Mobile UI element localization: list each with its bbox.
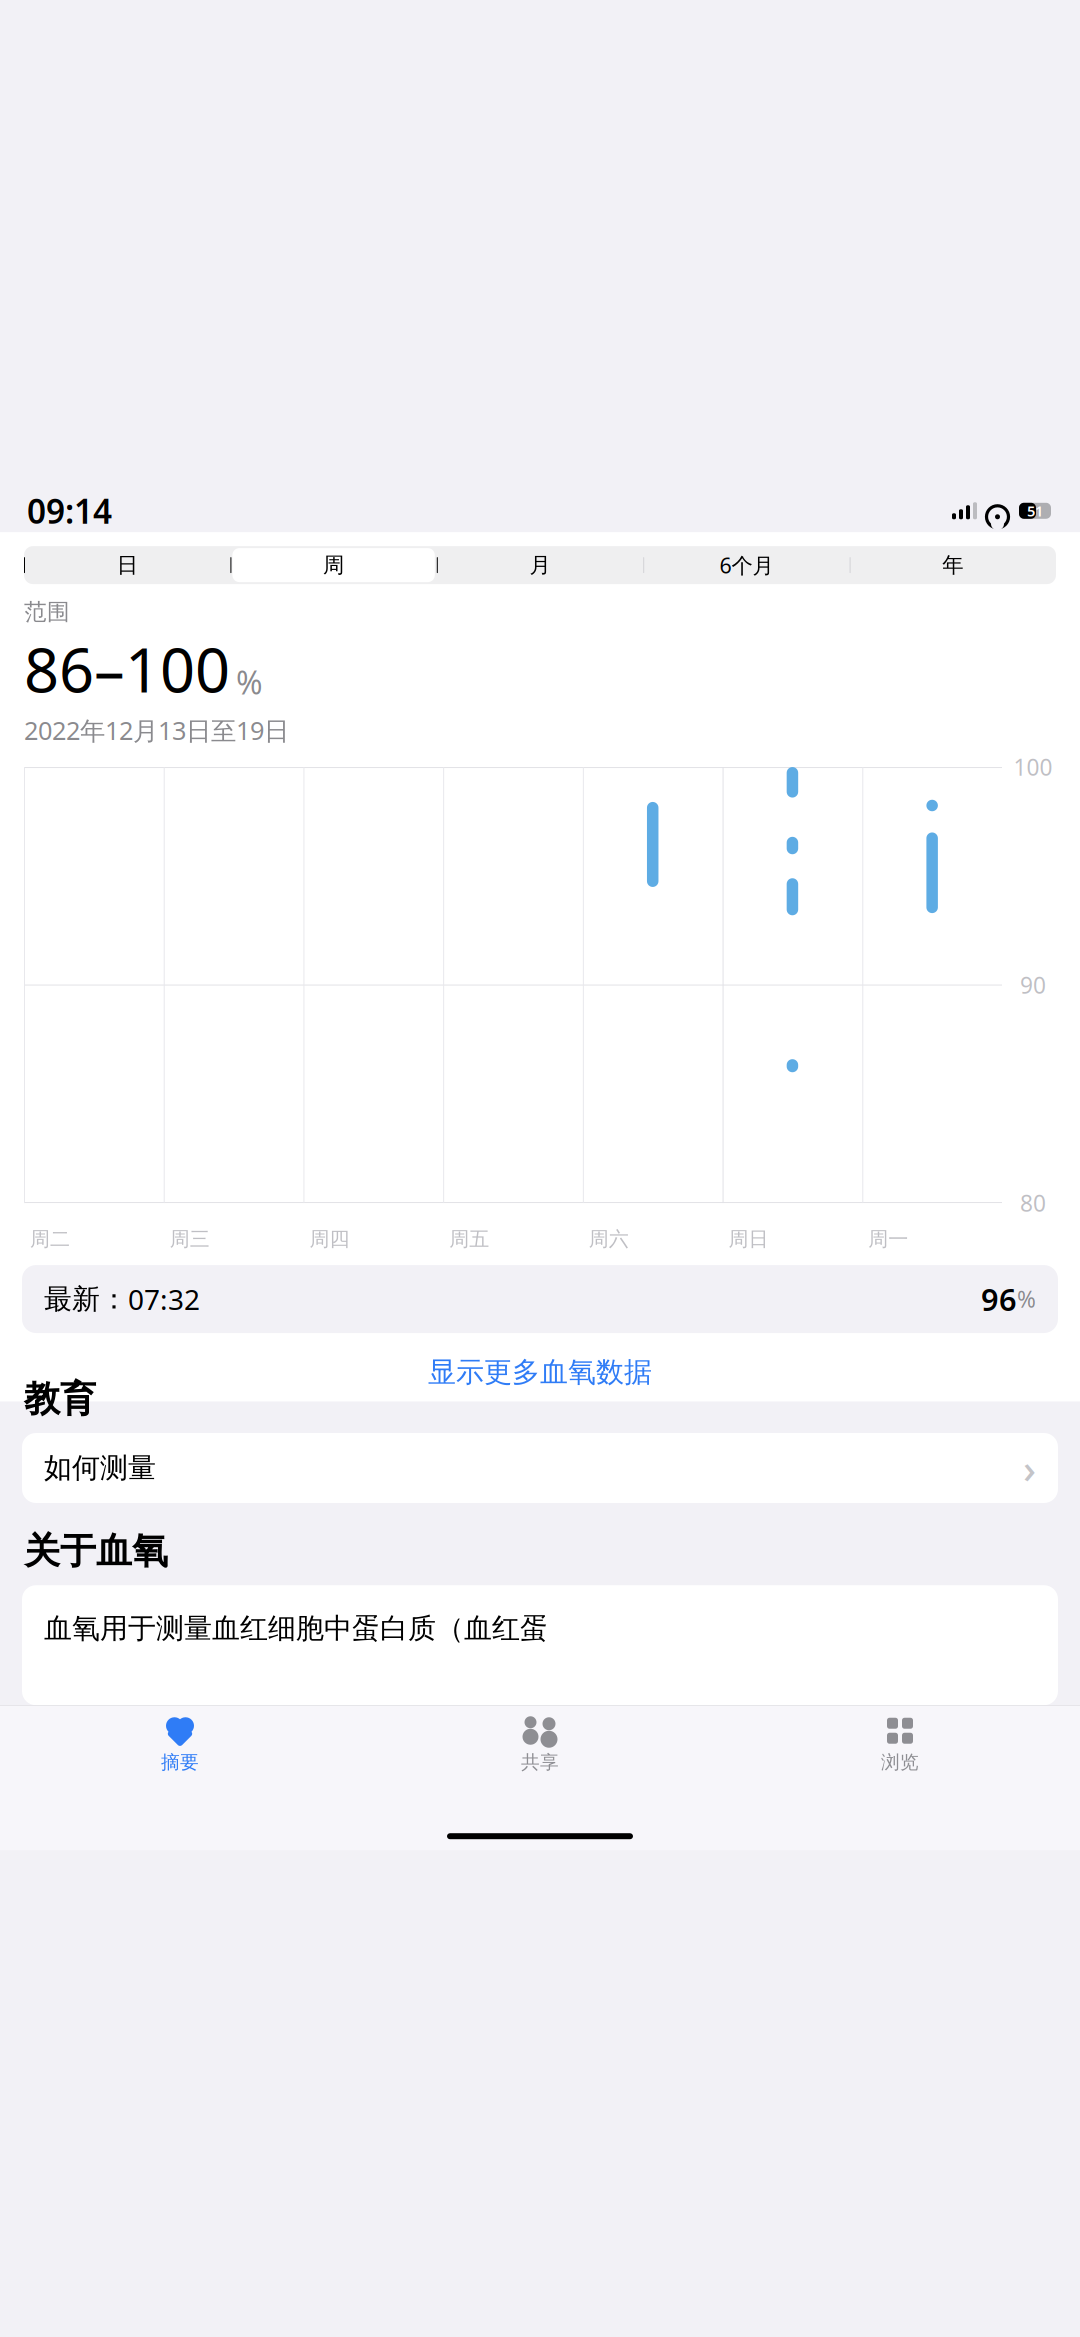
staticText: 周四 — [309, 1227, 349, 1251]
staticText: 80 — [1020, 1188, 1046, 1218]
staticText: 6个月 — [719, 551, 773, 579]
staticText: ‹ — [20, 531, 35, 591]
staticText: 摘要 — [161, 1751, 199, 1774]
staticText: 90 — [1020, 970, 1046, 1000]
staticText: 共享 — [521, 1751, 559, 1774]
staticText: 周三 — [170, 1227, 210, 1251]
staticText: 教育 — [24, 1377, 96, 1421]
staticText: 51 — [1027, 501, 1043, 520]
button[interactable]: 浏览 — [720, 1708, 1080, 1774]
staticText: 2022年12月13日至19日 — [24, 713, 289, 747]
staticText: 血氧用于测量血红细胞中蛋白质（血红蛋 — [44, 1611, 548, 1646]
staticText: 添加数据 — [952, 544, 1060, 577]
button[interactable]: 日 — [24, 546, 230, 584]
staticText: 如何测量 — [44, 1451, 156, 1485]
staticText: 关于血氧 — [24, 1529, 168, 1573]
staticText: 96 — [981, 1279, 1017, 1319]
button[interactable]: 添加数据 — [948, 538, 1064, 583]
staticText: 周二 — [30, 1227, 70, 1251]
staticText: 周日 — [729, 1227, 769, 1251]
button[interactable]: ‹ — [16, 525, 97, 597]
staticText: % — [236, 661, 263, 703]
button[interactable]: 摘要 — [0, 1708, 360, 1774]
staticText: % — [1017, 1284, 1036, 1314]
button[interactable]: 月 — [437, 546, 643, 584]
button[interactable]: 6个月 — [643, 546, 850, 584]
staticText: 日 — [117, 552, 138, 578]
staticText: 周六 — [589, 1227, 629, 1251]
staticText: 09:14 — [27, 489, 112, 533]
staticText: 血氧 — [513, 544, 567, 577]
staticText: › — [1023, 1441, 1036, 1494]
staticText: 范围 — [24, 598, 70, 626]
staticText: 周 — [323, 552, 344, 578]
staticText: 86–100 — [24, 628, 230, 709]
staticText: 07:32 — [128, 1280, 200, 1318]
staticText: 年 — [942, 552, 963, 578]
button[interactable]: 共享 — [360, 1708, 720, 1774]
staticText: 周一 — [868, 1227, 908, 1251]
staticText: 最新： — [44, 1282, 128, 1316]
staticText: 月 — [529, 552, 550, 578]
button[interactable]: 周 — [230, 546, 437, 584]
button[interactable]: 年 — [850, 546, 1056, 584]
button[interactable]: 如何测量 — [22, 1433, 1058, 1503]
staticText: 摘要 — [39, 544, 93, 577]
staticText: 显示更多血氧数据 — [428, 1355, 652, 1389]
staticText: 100 — [1013, 752, 1052, 782]
staticText: 浏览 — [881, 1751, 919, 1774]
button[interactable]: 最新： — [22, 1265, 1058, 1333]
button[interactable]: 显示更多血氧数据 — [0, 1343, 1080, 1401]
staticText: 周五 — [449, 1227, 489, 1251]
